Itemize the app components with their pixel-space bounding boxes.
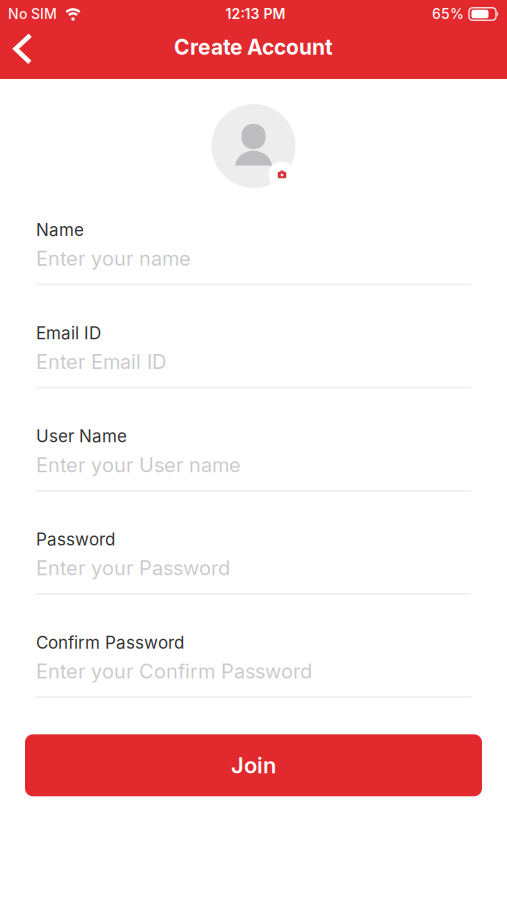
button[interactable]: Enter your User name <box>36 446 471 491</box>
staticText: Enter your Confirm Password <box>36 659 312 683</box>
button[interactable]: Enter your name <box>36 240 471 285</box>
staticText: Enter your name <box>36 246 191 271</box>
button[interactable]: Enter Email ID <box>36 343 471 388</box>
button[interactable]: Enter your Password <box>36 550 471 595</box>
button[interactable]: Enter your Confirm Password <box>36 653 471 698</box>
staticText: User Name <box>36 426 127 446</box>
button[interactable]: Join <box>25 734 482 796</box>
staticText: 65% <box>432 5 464 22</box>
staticText: Password <box>36 529 115 550</box>
staticText: Enter your User name <box>36 453 241 477</box>
staticText: No SIM <box>8 5 57 22</box>
staticText: Enter Email ID <box>36 350 166 374</box>
button[interactable]: Change profile photo <box>207 100 299 192</box>
staticText: 12:13 PM <box>225 5 285 22</box>
button[interactable]: Back <box>0 28 47 79</box>
staticText: Enter your Password <box>36 556 230 580</box>
staticText: Create Account <box>174 34 333 60</box>
staticText: Name <box>36 219 84 240</box>
staticText: Confirm Password <box>36 632 184 653</box>
staticText: Email ID <box>36 323 101 343</box>
staticText: Join <box>231 752 276 779</box>
